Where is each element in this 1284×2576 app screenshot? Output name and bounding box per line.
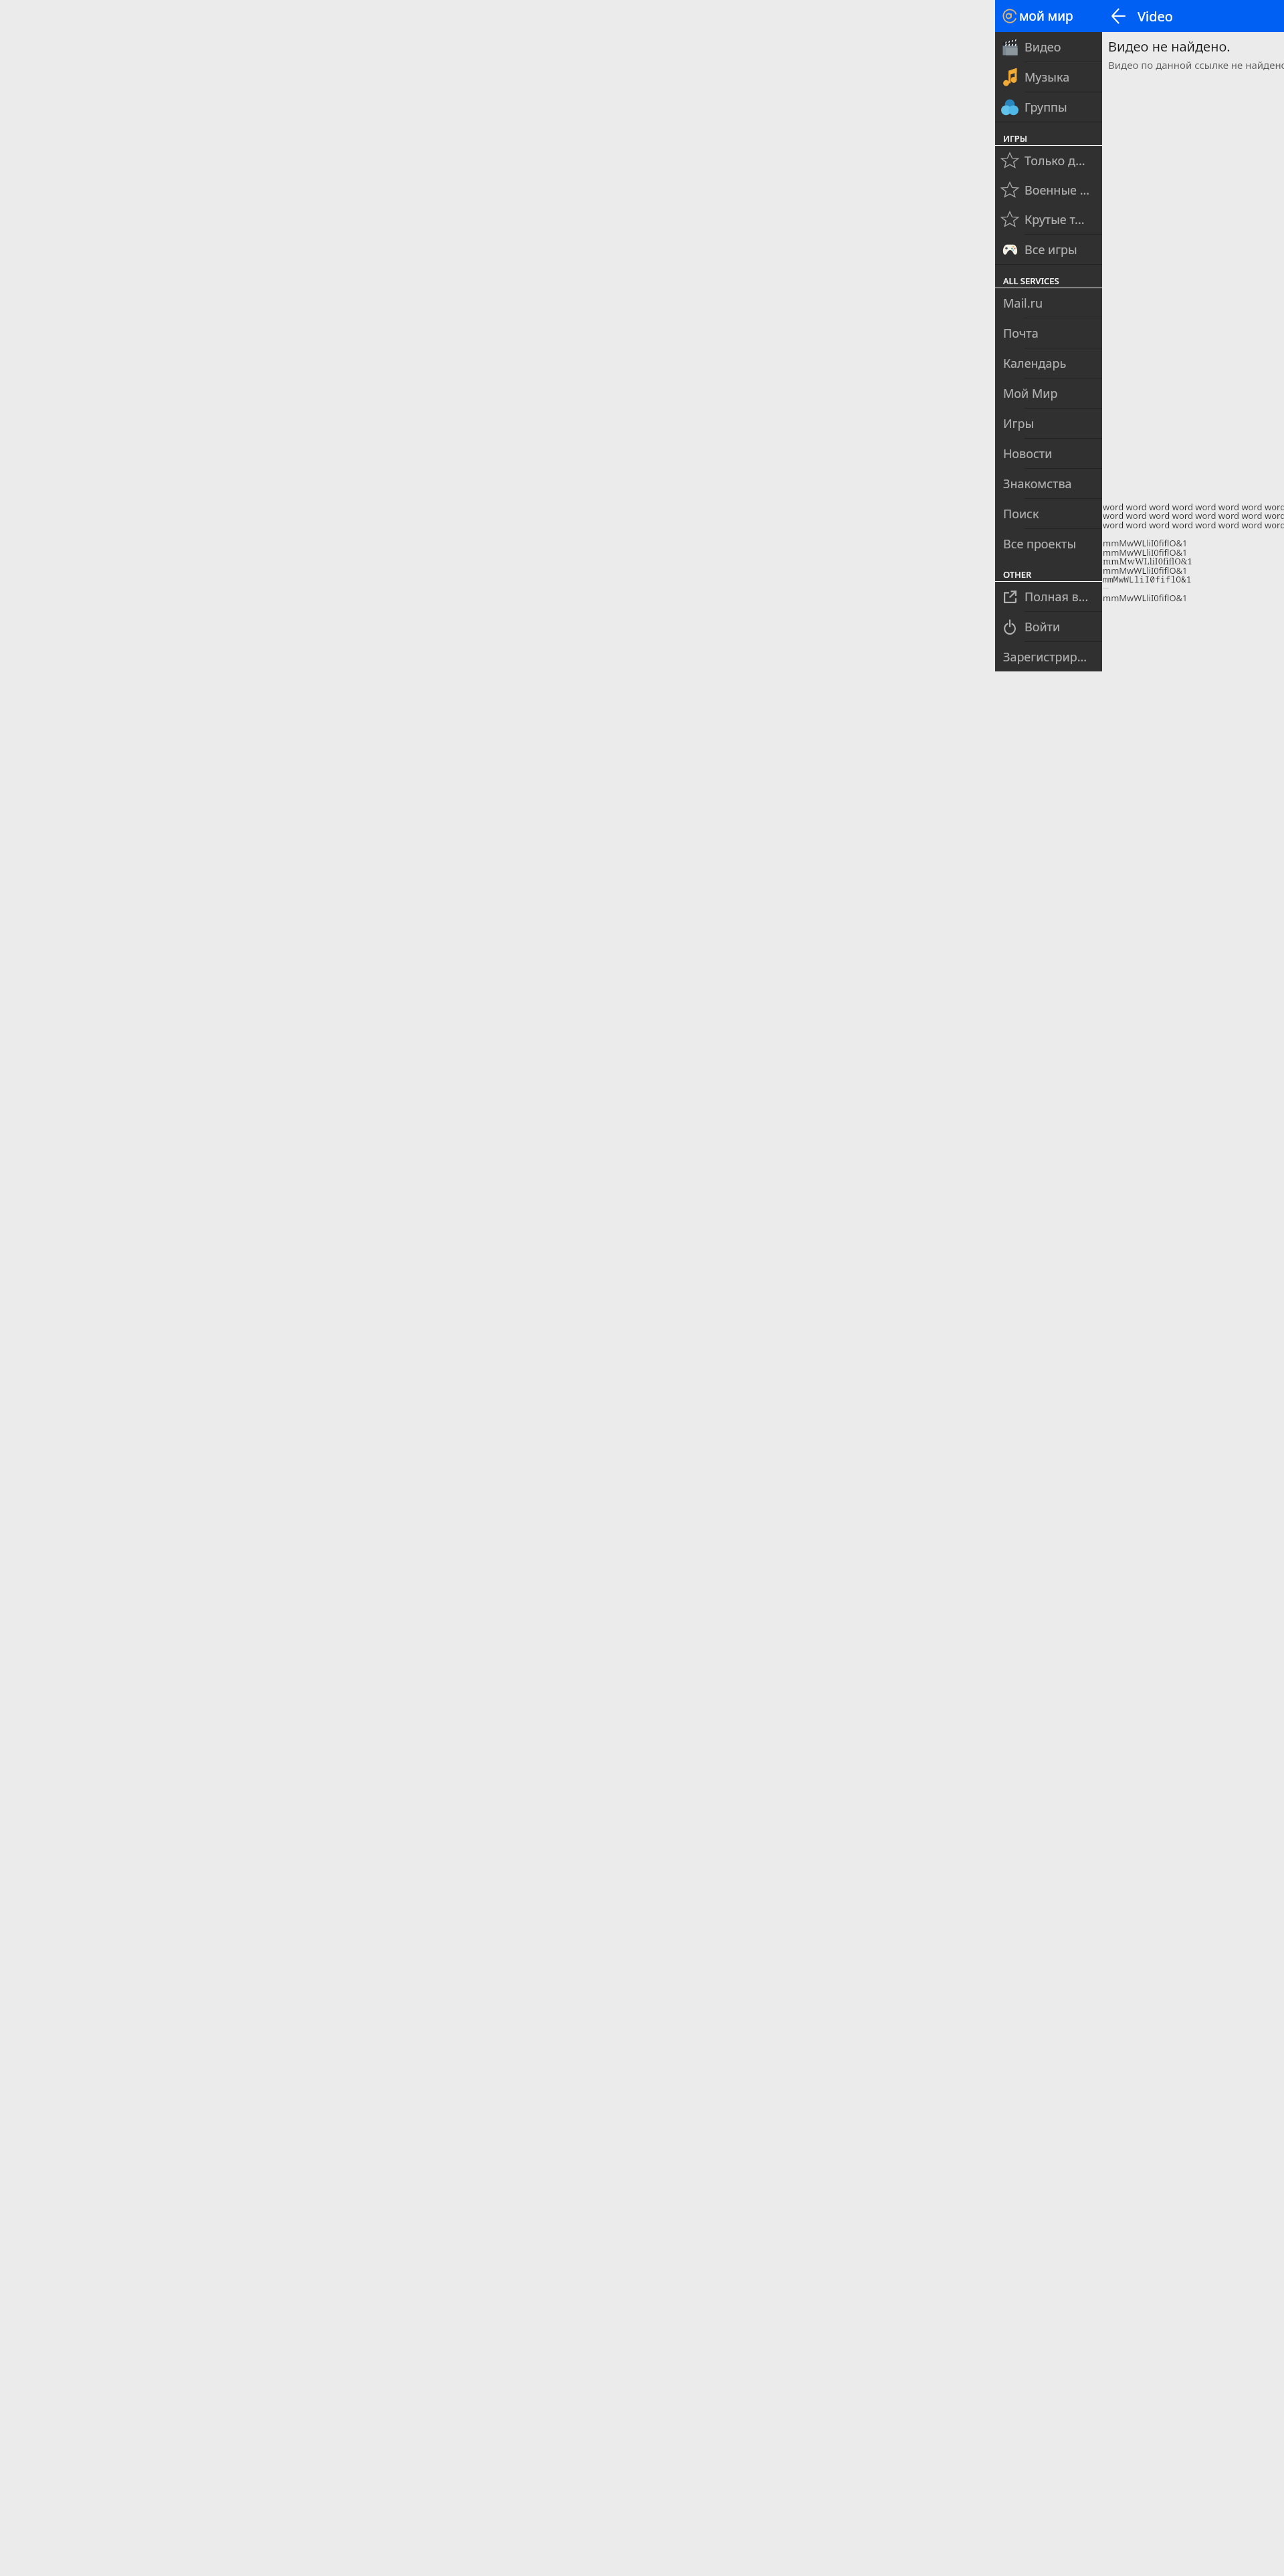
staticText: Военные ...: [1025, 182, 1090, 199]
button[interactable]: Полная в...: [995, 582, 1102, 611]
staticText: Полная в...: [1025, 588, 1089, 605]
staticText: ИГРЫ: [1003, 132, 1028, 144]
button[interactable]: Новости: [995, 439, 1102, 468]
staticText: Видео по данной ссылке не найдено, возмо…: [1108, 58, 1284, 72]
staticText: word word word word word word word word …: [1103, 519, 1284, 531]
button[interactable]: Back: [1102, 0, 1134, 32]
staticText: мой мир: [1019, 7, 1073, 25]
staticText: mmMwWLliI0fiflO&1: [1103, 573, 1192, 585]
button[interactable]: Mail.ru: [995, 288, 1102, 318]
staticText: Мой Мир: [1003, 385, 1058, 402]
button[interactable]: Военные ...: [995, 175, 1102, 205]
staticText: OTHER: [1003, 568, 1032, 580]
button[interactable]: Все игры: [995, 235, 1102, 264]
staticText: Video: [1138, 7, 1173, 25]
staticText: Mail.ru: [1003, 295, 1043, 312]
staticText: Зарегистрир...: [1003, 649, 1087, 665]
staticText: Почта: [1003, 325, 1039, 342]
button[interactable]: Зарегистрир...: [995, 642, 1102, 671]
staticText: Музыка: [1025, 69, 1070, 86]
staticText: Календарь: [1003, 355, 1067, 372]
staticText: Поиск: [1003, 506, 1039, 522]
button[interactable]: Только д...: [995, 146, 1102, 175]
button[interactable]: мой мир: [995, 0, 1102, 32]
staticText: Все игры: [1025, 241, 1077, 258]
button[interactable]: Знакомства: [995, 469, 1102, 498]
staticText: ALL SERVICES: [1003, 275, 1059, 287]
staticText: Группы: [1025, 99, 1067, 116]
button[interactable]: Музыка: [995, 62, 1102, 92]
staticText: Видео: [1025, 39, 1061, 56]
staticText: mmMwWLliI0fiflO&1: [1103, 537, 1188, 549]
button[interactable]: Календарь: [995, 348, 1102, 378]
staticText: mmMwWLliI0fiflO&1: [1103, 555, 1192, 567]
staticText: mmMwWLliI0fiflO&1: [1103, 546, 1188, 558]
button[interactable]: Все проекты: [995, 529, 1102, 558]
button[interactable]: Поиск: [995, 499, 1102, 528]
button[interactable]: Войти: [995, 612, 1102, 641]
staticText: Новости: [1003, 445, 1053, 462]
staticText: Игры: [1003, 415, 1035, 432]
button[interactable]: Почта: [995, 318, 1102, 348]
staticText: Войти: [1025, 619, 1061, 635]
staticText: Все проекты: [1003, 536, 1077, 552]
staticText: word word word word word word word word …: [1103, 501, 1284, 513]
staticText: Только д...: [1025, 152, 1085, 169]
staticText: word word word word word word word word …: [1103, 510, 1284, 522]
staticText: Крутые т...: [1025, 211, 1085, 228]
button[interactable]: Мой Мир: [995, 379, 1102, 408]
staticText: Знакомства: [1003, 475, 1072, 492]
button[interactable]: Игры: [995, 409, 1102, 438]
staticText: Видео не найдено.: [1108, 37, 1230, 56]
button[interactable]: Крутые т...: [995, 205, 1102, 234]
button[interactable]: Видео: [995, 32, 1102, 62]
button[interactable]: Группы: [995, 92, 1102, 122]
staticText: mmMwWLliI0fiflO&1: [1103, 564, 1188, 576]
staticText: mmMwWLliI0fiflO&1: [1103, 592, 1188, 604]
